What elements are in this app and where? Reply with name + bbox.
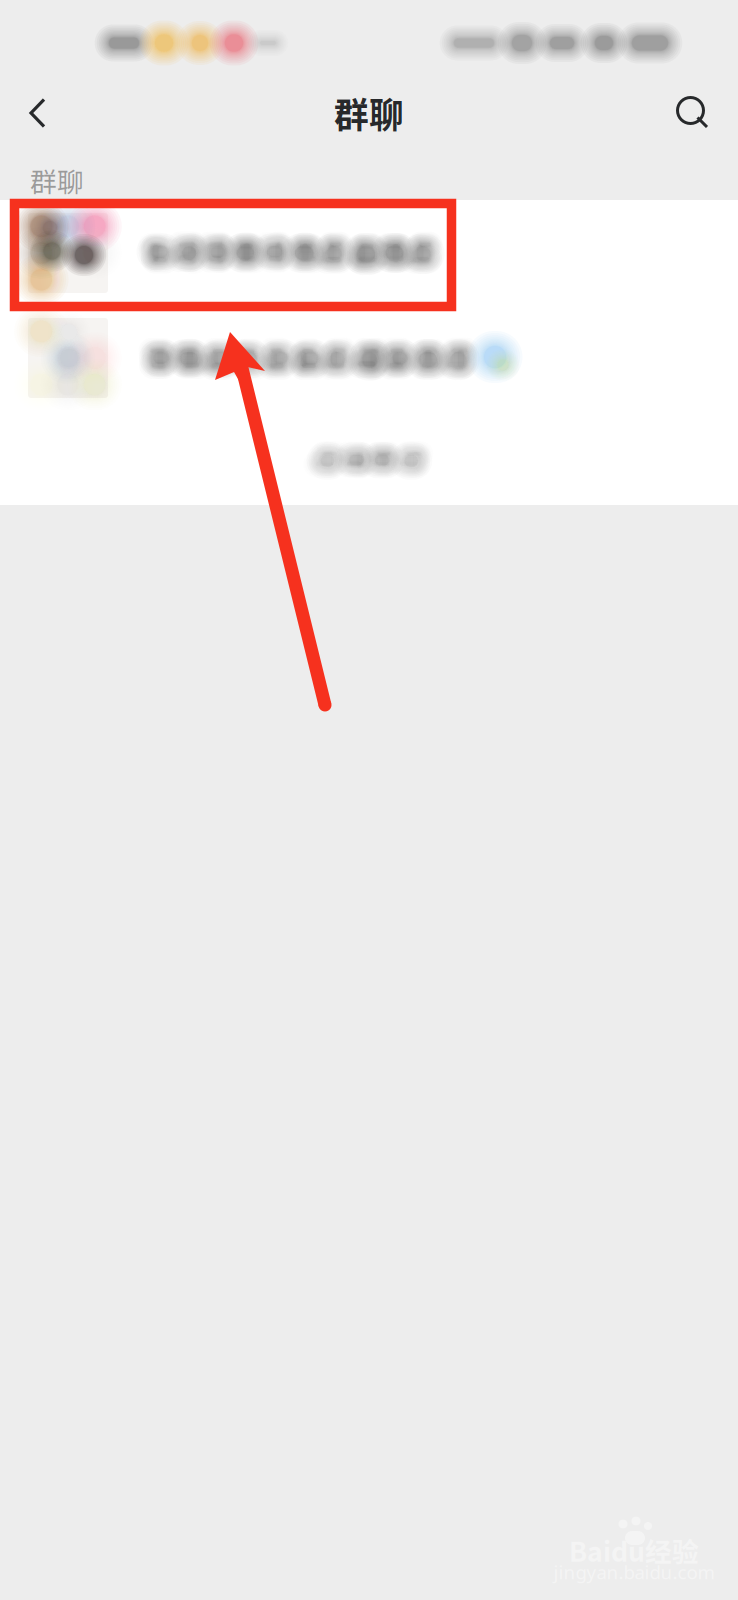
staticText: 群聊 <box>30 161 84 199</box>
button[interactable]: Search <box>653 69 733 157</box>
button[interactable]: Back <box>1 69 75 157</box>
staticText: Baidu经验 <box>569 1531 699 1569</box>
button[interactable]: 群聊 <box>0 305 738 410</box>
button[interactable]: 光与夜之恋~官方10群 <box>0 200 738 305</box>
staticText: 群聊 <box>334 88 404 138</box>
